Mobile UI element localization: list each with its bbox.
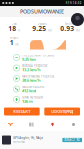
staticText: ŚREDNIA PRĘDKOŚĆ — [22, 64, 48, 68]
staticText: RESTART — [13, 109, 30, 114]
button[interactable]: SPALONE KALORIE — [0, 84, 84, 94]
button[interactable]: RESTART — [4, 107, 40, 115]
staticText: PRZEJECHANY DYSTANS — [22, 54, 54, 57]
staticText: Średnia — [65, 22, 75, 26]
staticText: Dystans — [37, 22, 46, 26]
staticText: 126 m — [22, 98, 33, 104]
staticText: 13.2 km/h — [22, 67, 41, 72]
staticText: m — [17, 29, 20, 32]
button[interactable]: ŚREDNIA PRĘDKOŚĆ — [0, 63, 84, 73]
staticText: SUMA WZNIESIEŃ — [22, 96, 43, 99]
staticText: 0.93 — [60, 24, 74, 33]
staticText: m/s — [47, 29, 52, 32]
button[interactable]: SUMA WZNIESIEŃ — [0, 94, 84, 105]
staticText: SPALONE KALORIE — [22, 85, 44, 89]
staticText: ZOBACZ TEŻ — [64, 138, 80, 142]
staticText: 412 kcal — [22, 88, 36, 93]
staticText: 85% — [66, 1, 72, 5]
button[interactable]: Trening — [0, 118, 21, 131]
staticText: 9.25 — [32, 24, 46, 33]
staticText: Tempo — [9, 36, 18, 40]
button[interactable]: Ustawienia — [63, 118, 84, 131]
button[interactable]: Mapa — [42, 118, 63, 131]
button[interactable]: MAKSYMALNA PRĘDKOŚĆ — [0, 73, 84, 84]
staticText: 9.25 km — [22, 56, 36, 62]
staticText: m/s — [75, 29, 80, 32]
staticText: GPS Angler, Fit, Moja — [13, 136, 42, 140]
staticText: UDOSTĘPNIJ — [51, 109, 73, 114]
staticText: 1 — [10, 38, 14, 47]
staticText: 18 — [8, 24, 16, 33]
button[interactable]: GPS Angler, Fit, Moja — [0, 131, 84, 149]
staticText: 14:32 — [73, 1, 82, 5]
button[interactable]: Historia — [21, 118, 42, 131]
button[interactable]: PRZEJECHANY DYSTANS — [0, 52, 84, 63]
button[interactable]: UDOSTĘPNIJ — [44, 107, 80, 115]
staticText: ms — [14, 43, 18, 46]
staticText: 38.6 km/h — [22, 77, 41, 83]
staticText: MAKSYMALNA PRĘDKOŚĆ — [22, 75, 55, 78]
staticText: PODSUMOWANIE — [20, 8, 64, 15]
staticText: trenerka — [13, 140, 24, 144]
staticText: Czas — [11, 22, 16, 26]
